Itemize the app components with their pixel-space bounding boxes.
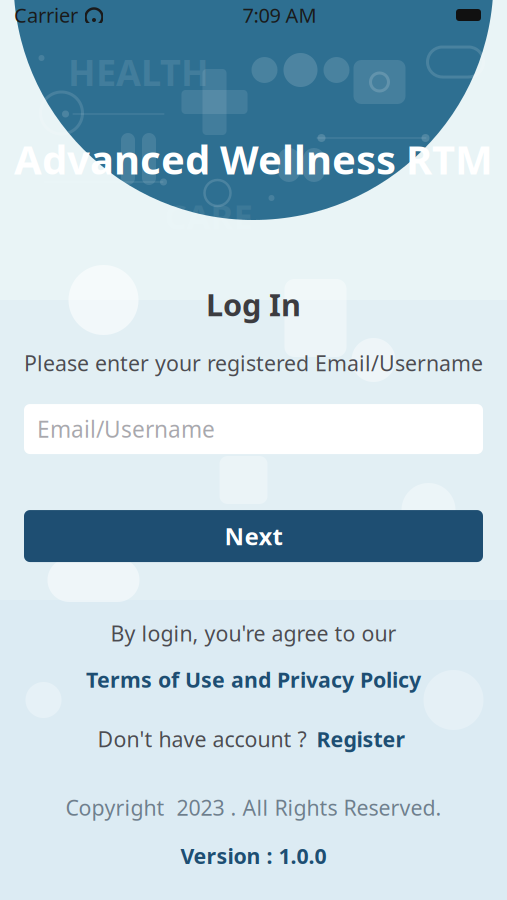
staticText: 7:09 AM <box>242 2 316 28</box>
staticText: Advanced Wellness RTM <box>14 132 493 185</box>
staticText: Next <box>224 520 282 552</box>
staticText: Register <box>316 725 405 753</box>
staticText: Log In <box>206 284 301 325</box>
staticText: CARE <box>164 193 252 239</box>
staticText: Don't have account ? <box>97 725 306 753</box>
button[interactable]: Email or Username field <box>24 404 483 454</box>
staticText: Carrier <box>14 2 78 28</box>
button[interactable]: Next <box>24 510 483 562</box>
staticText: Terms of Use and Privacy Policy <box>86 665 421 694</box>
button[interactable]: Register <box>312 723 409 755</box>
staticText: By login, you're agree to our <box>110 619 396 647</box>
staticText: Email/Username <box>37 414 215 444</box>
staticText: Please enter your registered Email/Usern… <box>24 349 483 377</box>
staticText: Copyright 2023 . All Rights Reserved. <box>65 793 441 822</box>
staticText: Version : 1.0.0 <box>180 842 326 870</box>
staticText: HEALTH <box>68 48 209 96</box>
button[interactable]: Terms of Use and Privacy Policy <box>80 663 427 696</box>
